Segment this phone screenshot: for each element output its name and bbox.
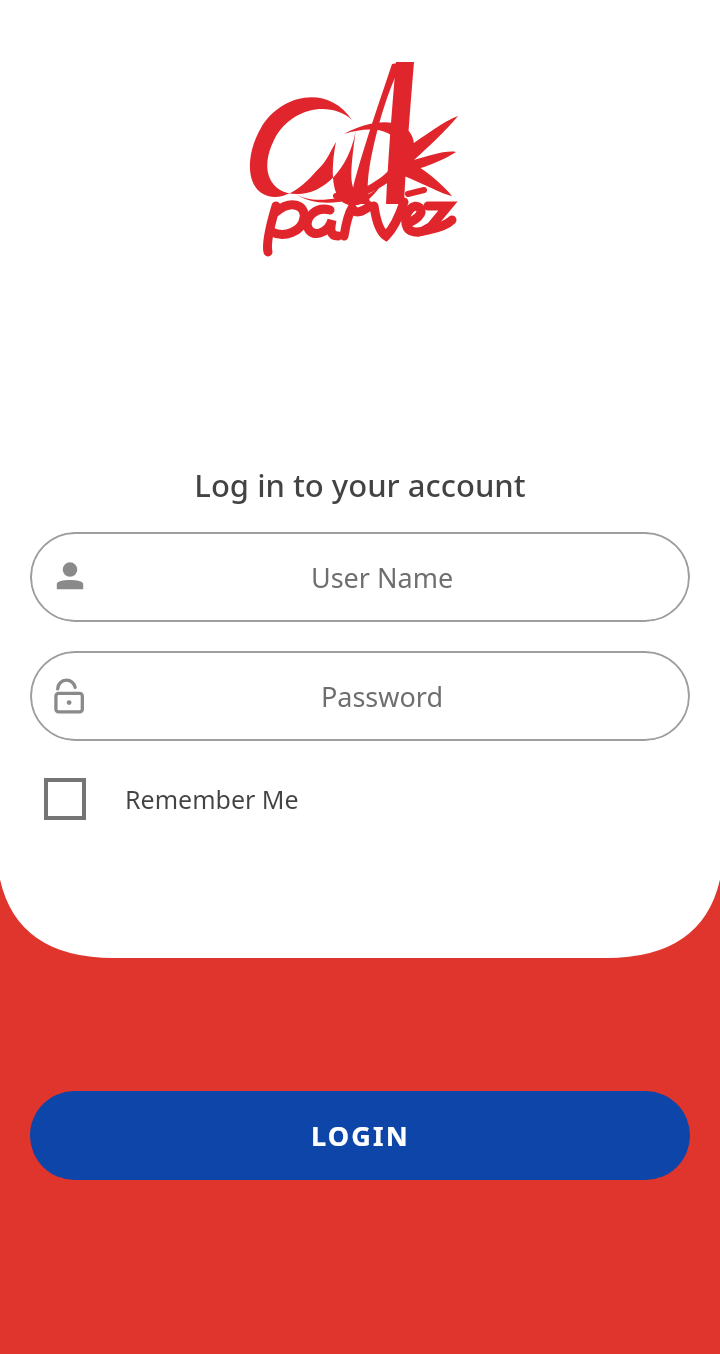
staticText: Log in to your account <box>194 464 526 506</box>
staticText: User Name <box>118 559 646 596</box>
button[interactable]: LOGIN <box>30 1091 690 1180</box>
staticText: Password <box>118 678 646 715</box>
other: Password <box>48 674 92 718</box>
button[interactable]: User name <box>30 532 690 622</box>
staticText: Remember Me <box>125 782 299 816</box>
other: User name <box>48 555 92 599</box>
button[interactable]: Remember Me <box>44 778 720 820</box>
staticText: LOGIN <box>311 1117 410 1154</box>
button[interactable]: Password <box>30 651 690 741</box>
